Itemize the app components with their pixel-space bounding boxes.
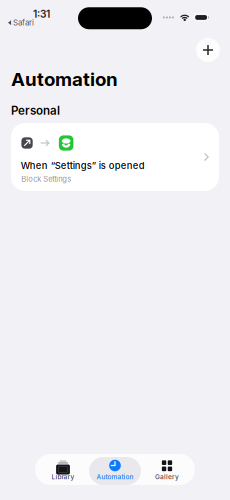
staticText: Gallery (155, 473, 179, 481)
staticText: Safari (13, 18, 34, 27)
button[interactable]: When “Settings” is opened (11, 123, 219, 191)
button[interactable]: Gallery (141, 454, 193, 485)
button[interactable]: Back to Safari (0, 17, 37, 28)
button[interactable]: Library (37, 454, 89, 485)
staticText: Automation (11, 68, 118, 91)
staticText: Library (51, 473, 74, 481)
staticText: 1:31 (33, 8, 50, 20)
staticText: When “Settings” is opened (21, 160, 145, 171)
staticText: Automation (96, 473, 133, 481)
button[interactable]: New Automation (193, 35, 223, 65)
button[interactable]: Automation (89, 454, 141, 485)
staticText: Personal (11, 103, 60, 117)
staticText: Block Settings (21, 174, 71, 184)
